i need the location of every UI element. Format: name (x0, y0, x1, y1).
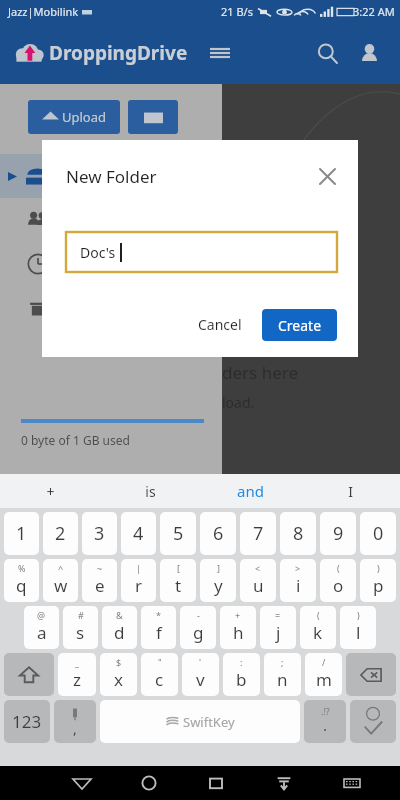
staticText: ; (281, 656, 284, 668)
staticText: Cancel (198, 315, 242, 334)
staticText: ( (337, 562, 340, 574)
staticText: | (136, 562, 141, 574)
button[interactable]: Recent (0, 242, 222, 286)
staticText: = (275, 609, 281, 621)
button[interactable]: > (280, 559, 316, 602)
staticText: 2 (55, 521, 66, 546)
staticText: Upload (62, 108, 107, 126)
button[interactable]: / (305, 653, 342, 696)
button[interactable]: ^ (43, 559, 78, 602)
button[interactable]: & (102, 606, 137, 649)
staticText: g (193, 621, 204, 644)
button[interactable]: % (4, 559, 39, 602)
button[interactable]: 3 (82, 512, 117, 555)
staticText: New Folder (66, 165, 157, 188)
button[interactable]: 123 (4, 700, 50, 743)
button[interactable]: * (141, 606, 176, 649)
button[interactable]: Shift (4, 653, 54, 696)
button[interactable]: [ (160, 559, 196, 602)
button[interactable]: Account (348, 32, 390, 74)
button[interactable]: Cancel (184, 307, 256, 342)
button[interactable]: = (260, 606, 296, 649)
staticText: 3:22 AM (353, 4, 395, 19)
button[interactable]: ] (200, 559, 236, 602)
staticText: e (95, 574, 105, 597)
button[interactable]: | (121, 559, 156, 602)
staticText: ) (357, 609, 360, 621)
staticText: ders here (222, 361, 298, 384)
button[interactable]: Voice input (54, 700, 96, 743)
button[interactable]: Recents (182, 766, 250, 800)
staticText: 0 (373, 521, 384, 546)
button[interactable]: Back (48, 766, 115, 800)
button[interactable]: Menu (202, 35, 238, 71)
button[interactable] (0, 154, 222, 198)
button[interactable]: New folder (128, 100, 178, 134)
button[interactable]: 5 (160, 512, 196, 555)
staticText: % (18, 562, 26, 574)
staticText: s (76, 621, 85, 644)
button[interactable]: Backspace (346, 653, 396, 696)
button[interactable]: 0 (360, 512, 396, 555)
button[interactable]: I (300, 474, 400, 508)
button[interactable]: + (0, 474, 100, 508)
button[interactable]: Create (262, 309, 337, 341)
button[interactable]: - (180, 606, 216, 649)
button[interactable]: ) (340, 606, 376, 649)
button[interactable]: Period (304, 700, 346, 743)
button[interactable]: is (100, 474, 200, 508)
button[interactable]: ( (300, 606, 336, 649)
staticText: _ (75, 656, 79, 668)
button[interactable]: 2 (43, 512, 78, 555)
button[interactable]: Space (100, 700, 300, 743)
button[interactable]: ~ (82, 559, 117, 602)
button[interactable]: ( (320, 559, 356, 602)
button[interactable]: Hide keyboard (250, 766, 318, 800)
staticText: 6 (213, 521, 224, 546)
staticText: 3 (94, 521, 105, 546)
staticText: t (175, 574, 182, 597)
button[interactable]: Keyboard (318, 766, 386, 800)
button[interactable]: _ (58, 653, 96, 696)
button[interactable]: 1 (4, 512, 39, 555)
button[interactable]: @ (24, 606, 59, 649)
button[interactable]: Close (308, 157, 346, 195)
staticText: 123 (12, 710, 42, 733)
button[interactable]: Trash (0, 286, 222, 330)
button[interactable]: 7 (240, 512, 276, 555)
button[interactable]: # (63, 606, 98, 649)
button[interactable]: " (141, 653, 178, 696)
button[interactable]: and (200, 474, 300, 508)
staticText: is (145, 482, 156, 501)
button[interactable]: Folder name (66, 232, 337, 272)
staticText: n (277, 668, 288, 691)
staticText: 7 (253, 521, 264, 546)
button[interactable]: Upload (28, 100, 120, 134)
button[interactable]: 8 (280, 512, 316, 555)
staticText: , (73, 719, 77, 738)
staticText: $ (116, 656, 122, 668)
staticText: [ (177, 562, 180, 574)
button[interactable]: + (220, 606, 256, 649)
staticText: k (313, 621, 323, 644)
staticText: + (235, 609, 241, 621)
button[interactable]: ' (182, 653, 219, 696)
button[interactable]: < (240, 559, 276, 602)
button[interactable]: Enter (350, 700, 396, 743)
button[interactable]: ; (264, 653, 301, 696)
staticText: + (46, 482, 55, 501)
button[interactable]: 4 (121, 512, 156, 555)
staticText: c (155, 668, 164, 691)
button[interactable]: Search (306, 32, 348, 74)
button[interactable]: Home (115, 766, 182, 800)
staticText: I (348, 482, 353, 501)
button[interactable]: : (223, 653, 260, 696)
staticText: y (214, 574, 223, 597)
staticText: 0 byte of 1 GB used (21, 432, 130, 448)
button[interactable]: ) (360, 559, 396, 602)
staticText: 1 (16, 521, 27, 546)
button[interactable]: Shared (0, 198, 222, 242)
button[interactable]: 6 (200, 512, 236, 555)
button[interactable]: $ (100, 653, 137, 696)
button[interactable]: 9 (320, 512, 356, 555)
